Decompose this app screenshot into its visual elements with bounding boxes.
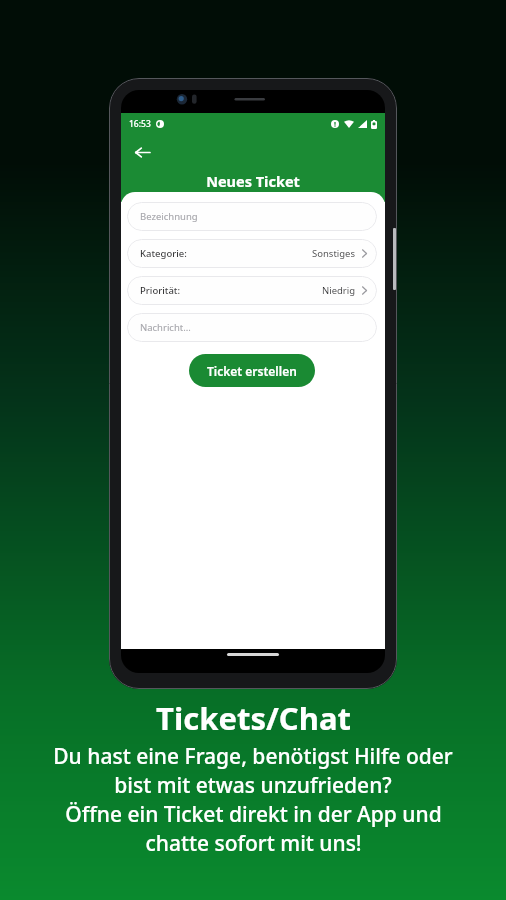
staticText: bist mit etwas unzufrieden? [114, 771, 392, 800]
staticText: Kategorie: [140, 247, 187, 260]
staticText: Ticket erstellen [207, 363, 297, 379]
staticText: Priorität: [140, 284, 181, 297]
button[interactable]: Zurück [129, 139, 155, 165]
button[interactable]: Kategorie: [127, 239, 377, 268]
button[interactable]: Nachricht... [127, 313, 377, 342]
button[interactable]: Bezeichnung [127, 202, 377, 231]
staticText: 16:53 [129, 118, 151, 130]
staticText: chatte sofort mit uns! [145, 829, 362, 858]
staticText: Sonstiges [312, 247, 356, 260]
staticText: Bezeichnung [140, 210, 198, 223]
staticText: Niedrig [322, 284, 356, 297]
staticText: Nachricht... [140, 321, 191, 334]
staticText: Neues Ticket [121, 171, 385, 191]
staticText: Öffne ein Ticket direkt in der App und [65, 800, 442, 829]
button[interactable]: Priorität: [127, 276, 377, 305]
staticText: Du hast eine Frage, benötigst Hilfe oder [53, 742, 453, 771]
staticText: Tickets/Chat [156, 697, 351, 739]
button[interactable]: Ticket erstellen [189, 354, 315, 387]
